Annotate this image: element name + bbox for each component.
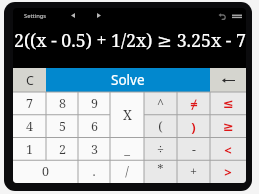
button[interactable]: Settings [22, 10, 49, 22]
button[interactable]: > [210, 160, 246, 183]
staticText: 8 [59, 95, 66, 112]
button[interactable]: < [210, 138, 246, 161]
button[interactable]: Solve [46, 68, 210, 92]
button[interactable]: 4 [13, 115, 46, 138]
staticText: ) [191, 118, 196, 136]
button[interactable]: * [144, 160, 177, 183]
button[interactable]: Undo [214, 8, 229, 24]
button[interactable]: ( [144, 115, 177, 138]
staticText: 4 [26, 118, 33, 135]
button[interactable]: ≤ [210, 92, 246, 115]
staticText: Solve [111, 71, 145, 89]
staticText: > [224, 163, 232, 181]
staticText: / [125, 163, 129, 180]
button[interactable]: _ [110, 138, 144, 161]
staticText: 2((x - 0.5) + 1/2x) ≥ 3.25x - 7 [14, 28, 246, 52]
button[interactable]: 1 [13, 138, 46, 161]
button[interactable]: / [110, 160, 144, 183]
button[interactable]: 0 [13, 160, 78, 183]
staticText: + [190, 163, 197, 180]
button[interactable]: 3 [78, 138, 110, 161]
staticText: < [224, 141, 232, 159]
button[interactable]: ÷ [144, 138, 177, 161]
button[interactable]: 9 [78, 92, 110, 115]
button[interactable]: 2 [46, 138, 78, 161]
staticText: . [92, 163, 96, 180]
staticText: ^ [157, 95, 164, 112]
staticText: ÷ [157, 141, 164, 158]
button[interactable]: ≠ [177, 92, 210, 115]
button[interactable]: Backspace [210, 68, 246, 92]
staticText: Settings [24, 12, 47, 20]
staticText: 9 [91, 95, 98, 112]
staticText: X [123, 106, 132, 124]
staticText: C [26, 72, 34, 89]
button[interactable]: Menu [229, 8, 244, 24]
button[interactable]: 7 [13, 92, 46, 115]
button[interactable]: Previous [65, 8, 81, 22]
staticText: 3 [91, 141, 98, 158]
staticText: 5 [59, 118, 66, 135]
button[interactable]: + [177, 160, 210, 183]
staticText: ≠ [190, 95, 198, 113]
staticText: _ [124, 141, 130, 158]
staticText: - [192, 141, 196, 158]
staticText: ( [158, 118, 163, 135]
staticText: 0 [42, 163, 49, 180]
staticText: 1 [26, 141, 33, 158]
staticText: * [157, 161, 164, 178]
staticText: 6 [91, 118, 98, 135]
button[interactable]: X [110, 92, 144, 138]
button[interactable]: ≥ [210, 115, 246, 138]
button[interactable]: - [177, 138, 210, 161]
button[interactable]: Next [91, 8, 107, 22]
button[interactable]: 8 [46, 92, 78, 115]
staticText: ≤ [223, 96, 234, 111]
staticText: 7 [26, 95, 33, 112]
button[interactable]: ^ [144, 92, 177, 115]
staticText: ≥ [223, 119, 234, 134]
button[interactable]: C [13, 68, 46, 92]
button[interactable]: ) [177, 115, 210, 138]
staticText: 2 [59, 141, 66, 158]
button[interactable]: . [78, 160, 110, 183]
button[interactable]: 6 [78, 115, 110, 138]
button[interactable]: 5 [46, 115, 78, 138]
